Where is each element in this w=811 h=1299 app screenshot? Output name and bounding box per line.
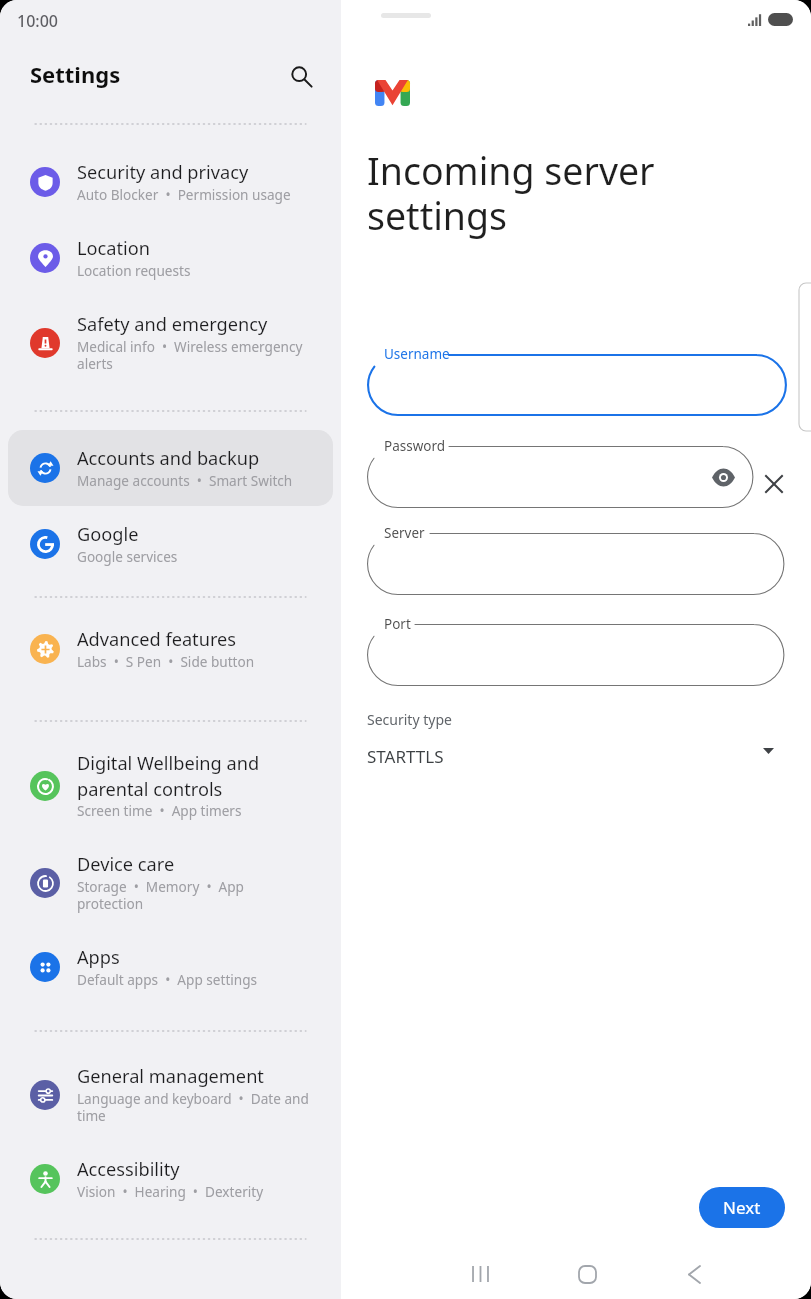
staticText: STARTTLS [367,745,444,767]
staticText: Accounts and backup [77,446,260,471]
button[interactable]: Username [367,344,788,416]
staticText: Settings [30,59,121,89]
staticText: Digital Wellbeing and parental controls [77,751,260,801]
button[interactable]: Back [682,1262,706,1286]
staticText: Apps [77,945,120,970]
button[interactable]: Safety and emergency [8,296,333,389]
staticText: Screen time • App timers [77,801,242,820]
button[interactable]: Security and privacy [8,144,333,220]
staticText: Labs • S Pen • Side button [77,652,255,671]
staticText: Google [77,522,139,547]
staticText: Security and privacy [77,160,249,185]
staticText: Port [384,615,411,633]
button[interactable]: Accessibility [8,1141,333,1217]
button[interactable]: Google [8,506,333,582]
button[interactable]: Home [575,1262,599,1286]
staticText: Location [77,236,150,261]
staticText: Storage • Memory • App protection [77,877,244,913]
staticText: Next [723,1196,761,1219]
staticText: Vision • Hearing • Dexterity [77,1182,264,1201]
staticText: Incoming server settings [367,145,655,241]
button[interactable]: General management [8,1048,333,1141]
staticText: Server [384,524,425,542]
staticText: Advanced features [77,627,237,652]
staticText: Medical info • Wireless emergency alerts [77,337,303,373]
staticText: General management [77,1064,264,1089]
button[interactable]: Server [367,523,785,595]
staticText: Auto Blocker • Permission usage [77,185,291,204]
button[interactable]: Apps [8,929,333,1005]
staticText: Password [384,437,446,455]
staticText: Google services [77,547,178,566]
staticText: Security type [367,710,452,729]
button[interactable]: STARTTLS [367,745,774,767]
staticText: Accessibility [77,1157,180,1182]
button[interactable]: Clear [754,464,794,504]
button[interactable]: Digital Wellbeing and parental controls [8,735,333,836]
button[interactable]: Recent apps [468,1262,492,1286]
staticText: Manage accounts • Smart Switch [77,471,293,490]
staticText: Language and keyboard • Date and time [77,1089,309,1125]
button[interactable]: Next [699,1187,785,1228]
staticText: Location requests [77,261,191,280]
staticText: Safety and emergency [77,312,268,337]
staticText: Device care [77,852,175,877]
staticText: Username [384,345,450,363]
staticText: 10:00 [17,10,58,32]
staticText: Default apps • App settings [77,970,258,989]
button[interactable]: Password [367,436,754,508]
button[interactable]: Device care [8,836,333,929]
button[interactable]: Show password [708,462,738,492]
button[interactable]: Advanced features [8,611,333,687]
button[interactable]: Port [367,614,785,686]
button[interactable]: Location [8,220,333,296]
button[interactable]: Search [283,58,319,94]
button[interactable]: Accounts and backup [8,430,333,506]
